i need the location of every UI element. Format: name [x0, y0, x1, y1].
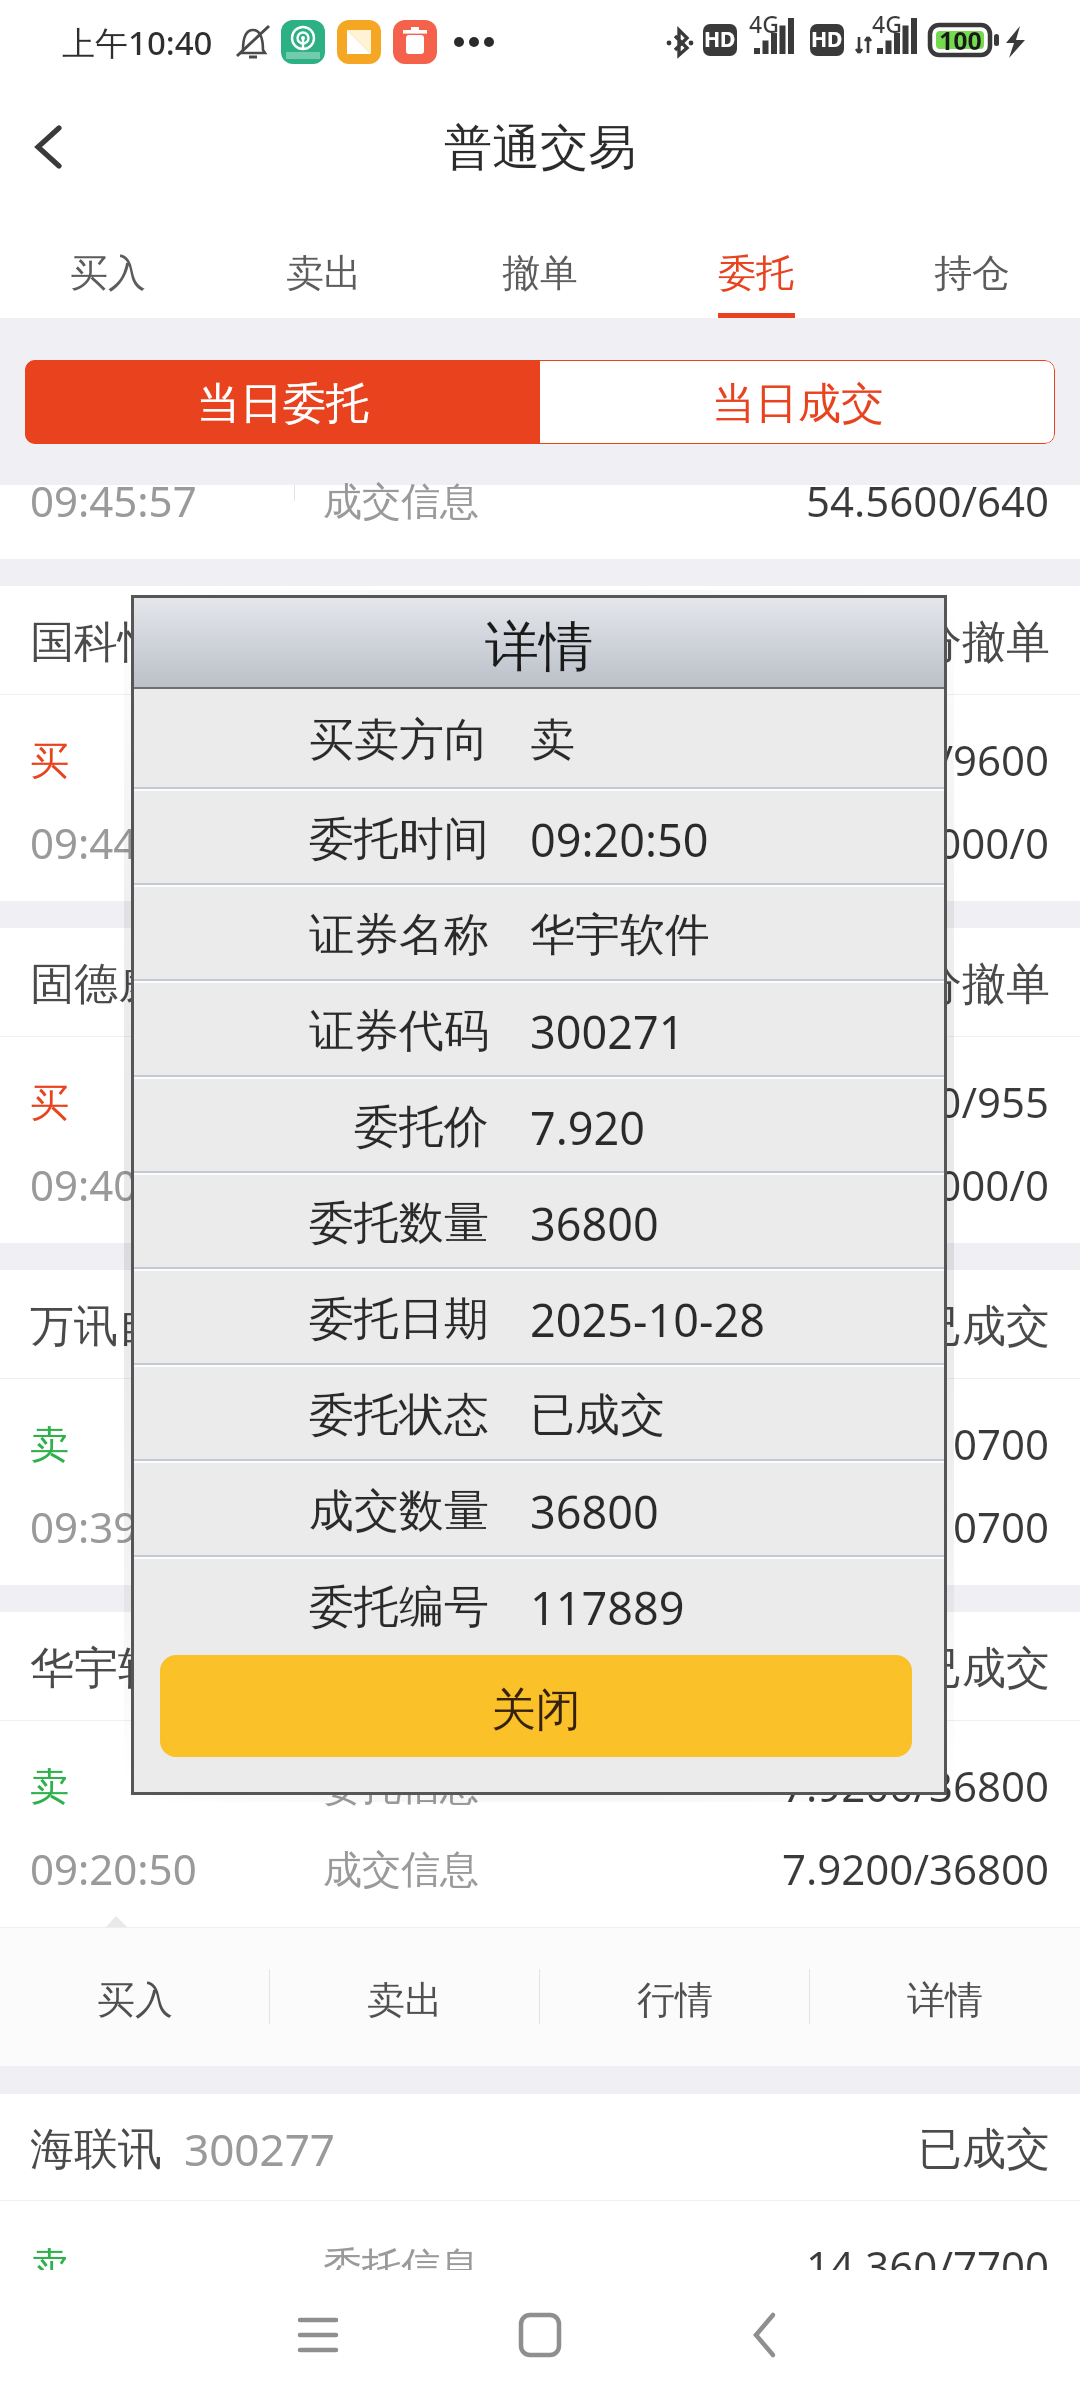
staticText: 9.350/10700: [806, 1415, 1050, 1463]
staticText: 300112: [228, 1296, 380, 1356]
staticText: 0.000/0: [902, 814, 1050, 862]
staticText: 09:40:11: [30, 1156, 197, 1204]
button[interactable]: Menu: [258, 2284, 378, 2386]
staticText: 09:44:40: [30, 814, 197, 862]
staticText: 委托信息: [323, 1762, 479, 1810]
staticText: 51.000/955: [830, 1073, 1050, 1121]
staticText: 已成交: [918, 1641, 1050, 1696]
staticText: HD: [811, 25, 843, 54]
staticText: 当日委托: [197, 377, 369, 431]
staticText: 证券代码: [309, 1003, 489, 1060]
staticText: 36800: [530, 1193, 659, 1254]
staticText: 委托价: [354, 1099, 489, 1156]
staticText: 卖: [30, 1420, 69, 1468]
staticText: 100: [939, 23, 982, 55]
staticText: 4G: [872, 8, 902, 39]
staticText: 7.920: [530, 1097, 646, 1158]
staticText: 300271: [228, 1638, 380, 1698]
staticText: 7.9200/36800: [782, 1840, 1050, 1888]
staticText: 委托: [718, 249, 794, 297]
button[interactable]: 关闭: [160, 1655, 912, 1757]
staticText: 9.350/10700: [806, 1498, 1050, 1546]
button[interactable]: Back: [706, 2284, 826, 2386]
staticText: 当日成交: [712, 377, 884, 431]
staticText: 已成交: [918, 2122, 1050, 2177]
staticText: 详情: [485, 613, 593, 681]
staticText: 成交信息: [323, 819, 479, 867]
staticText: 固德威: [30, 957, 162, 1012]
staticText: 09:45:57: [30, 472, 197, 520]
staticText: 卖出: [286, 249, 362, 297]
staticText: 委托数量: [309, 1195, 489, 1252]
staticText: 委托编号: [309, 1579, 489, 1636]
button[interactable]: Back: [0, 95, 110, 205]
staticText: 海联讯: [30, 2122, 162, 2177]
staticText: 撤单: [502, 249, 578, 297]
button[interactable]: 卖出: [270, 1927, 540, 2066]
staticText: 卖: [30, 1762, 69, 1810]
staticText: 成交信息: [323, 1845, 479, 1893]
button[interactable]: 卖出: [216, 216, 432, 318]
staticText: 委托信息: [323, 1420, 479, 1468]
button[interactable]: 买入: [0, 1927, 270, 2066]
staticText: 301370: [228, 612, 380, 672]
staticText: 国科恒泰: [30, 615, 206, 670]
staticText: 委托信息: [323, 736, 479, 784]
staticText: 卖: [530, 712, 575, 769]
button[interactable]: 当日委托: [25, 360, 540, 444]
staticText: HD: [704, 25, 736, 54]
staticText: 300277: [184, 2119, 336, 2179]
staticText: 成交数量: [309, 1483, 489, 1540]
staticText: 委托日期: [309, 1291, 489, 1348]
staticText: 委托状态: [309, 1387, 489, 1444]
staticText: 委托信息: [323, 1078, 479, 1126]
staticText: 买卖方向: [309, 712, 489, 769]
staticText: 买入: [70, 249, 146, 297]
staticText: 成交信息: [323, 1161, 479, 1209]
button[interactable]: 买入: [0, 216, 216, 318]
staticText: 成交信息: [323, 477, 479, 525]
staticText: 委托时间: [309, 811, 489, 868]
staticText: 详情: [907, 1976, 983, 2024]
staticText: 部分撤单: [874, 615, 1050, 670]
staticText: 买: [30, 1078, 69, 1126]
staticText: 上午10:40: [62, 20, 213, 65]
button[interactable]: 华宇软件: [0, 1612, 1080, 1927]
staticText: 行情: [637, 1976, 713, 2024]
staticText: 卖: [30, 2242, 69, 2290]
staticText: 委托信息: [323, 2242, 479, 2290]
staticText: 688390: [184, 954, 336, 1014]
staticText: 0.000/0: [902, 1156, 1050, 1204]
staticText: 普通交易: [444, 118, 636, 178]
staticText: 7.9200/36800: [782, 1757, 1050, 1805]
staticText: 已成交: [530, 1387, 665, 1444]
button[interactable]: 当日成交: [540, 360, 1055, 444]
button[interactable]: 固德威: [0, 928, 1080, 1243]
staticText: 15.560/9600: [806, 731, 1050, 779]
staticText: 万讯自控: [30, 1299, 206, 1354]
staticText: 09:20:50: [30, 1840, 197, 1888]
button[interactable]: 撤单: [432, 216, 648, 318]
staticText: 部分撤单: [874, 957, 1050, 1012]
staticText: 4G: [749, 8, 779, 39]
staticText: 2025-10-28: [530, 1289, 765, 1350]
staticText: 09:20:50: [530, 809, 709, 870]
button[interactable]: 万讯自控: [0, 1270, 1080, 1585]
staticText: 成交信息: [323, 1503, 479, 1551]
staticText: 关闭: [491, 1682, 581, 1739]
staticText: 14.360/7700: [806, 2237, 1050, 2285]
staticText: 买: [30, 736, 69, 784]
button[interactable]: 行情: [540, 1927, 810, 2066]
staticText: 54.5600/640: [806, 472, 1050, 520]
staticText: 买入: [97, 1976, 173, 2024]
button[interactable]: 国科恒泰: [0, 586, 1080, 901]
button[interactable]: 详情: [810, 1927, 1080, 2066]
button[interactable]: Home: [480, 2284, 600, 2386]
staticText: 117889: [530, 1577, 685, 1638]
button[interactable]: 持仓: [864, 216, 1080, 318]
staticText: 证券名称: [309, 907, 489, 964]
staticText: 华宇软件: [530, 907, 710, 964]
button[interactable]: 委托: [648, 216, 864, 318]
staticText: 36800: [530, 1481, 659, 1542]
staticText: 300271: [530, 1001, 685, 1062]
